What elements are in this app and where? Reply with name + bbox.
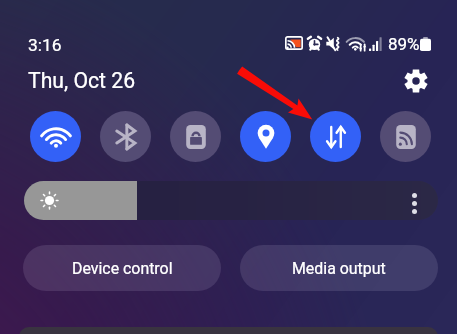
staticText: Media output (292, 259, 386, 278)
button[interactable]: Location (240, 111, 291, 162)
button[interactable]: Device control (23, 245, 221, 291)
button[interactable]: Media output (240, 245, 438, 291)
staticText: Thu, Oct 26 (28, 68, 136, 93)
staticText: 3:16 (28, 35, 62, 55)
staticText: 89% (388, 34, 420, 54)
button[interactable]: Brightness (24, 181, 438, 220)
button[interactable]: Settings (402, 67, 430, 95)
button[interactable]: Mobile data (310, 111, 361, 162)
button[interactable]: Wi-Fi (30, 111, 81, 162)
button[interactable]: Hotspot (380, 111, 431, 162)
button[interactable]: Bluetooth (100, 111, 151, 162)
button[interactable]: Screen lock (170, 111, 221, 162)
staticText: Device control (72, 259, 173, 278)
